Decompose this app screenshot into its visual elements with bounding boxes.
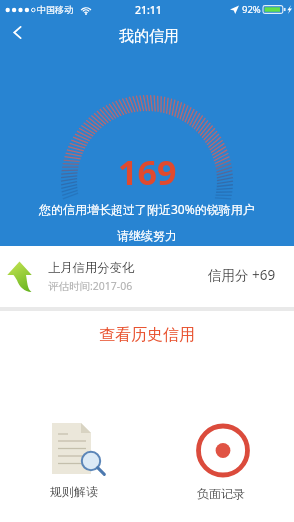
- staticText: 评估时间:2017-06: [48, 279, 133, 293]
- staticText: 中国移动: [37, 4, 73, 15]
- staticText: 信用分 +69: [208, 266, 276, 284]
- staticText: 您的信用增长超过了附近30%的锐骑用户: [39, 201, 255, 217]
- staticText: 规则解读: [50, 484, 98, 499]
- button[interactable]: Back: [0, 18, 34, 46]
- staticText: 169: [118, 149, 177, 195]
- button[interactable]: 负面记录: [147, 360, 294, 501]
- staticText: 请继续努力: [117, 228, 177, 243]
- button[interactable]: 规则解读: [0, 360, 147, 499]
- button[interactable]: 上月信用分变化: [0, 246, 294, 307]
- button[interactable]: 查看历史信用: [0, 311, 294, 359]
- staticText: 查看历史信用: [99, 325, 195, 345]
- staticText: 92%: [242, 3, 261, 16]
- staticText: 我的信用: [119, 27, 179, 46]
- staticText: 21:11: [135, 3, 162, 17]
- staticText: 上月信用分变化: [48, 260, 135, 275]
- staticText: 负面记录: [197, 486, 245, 501]
